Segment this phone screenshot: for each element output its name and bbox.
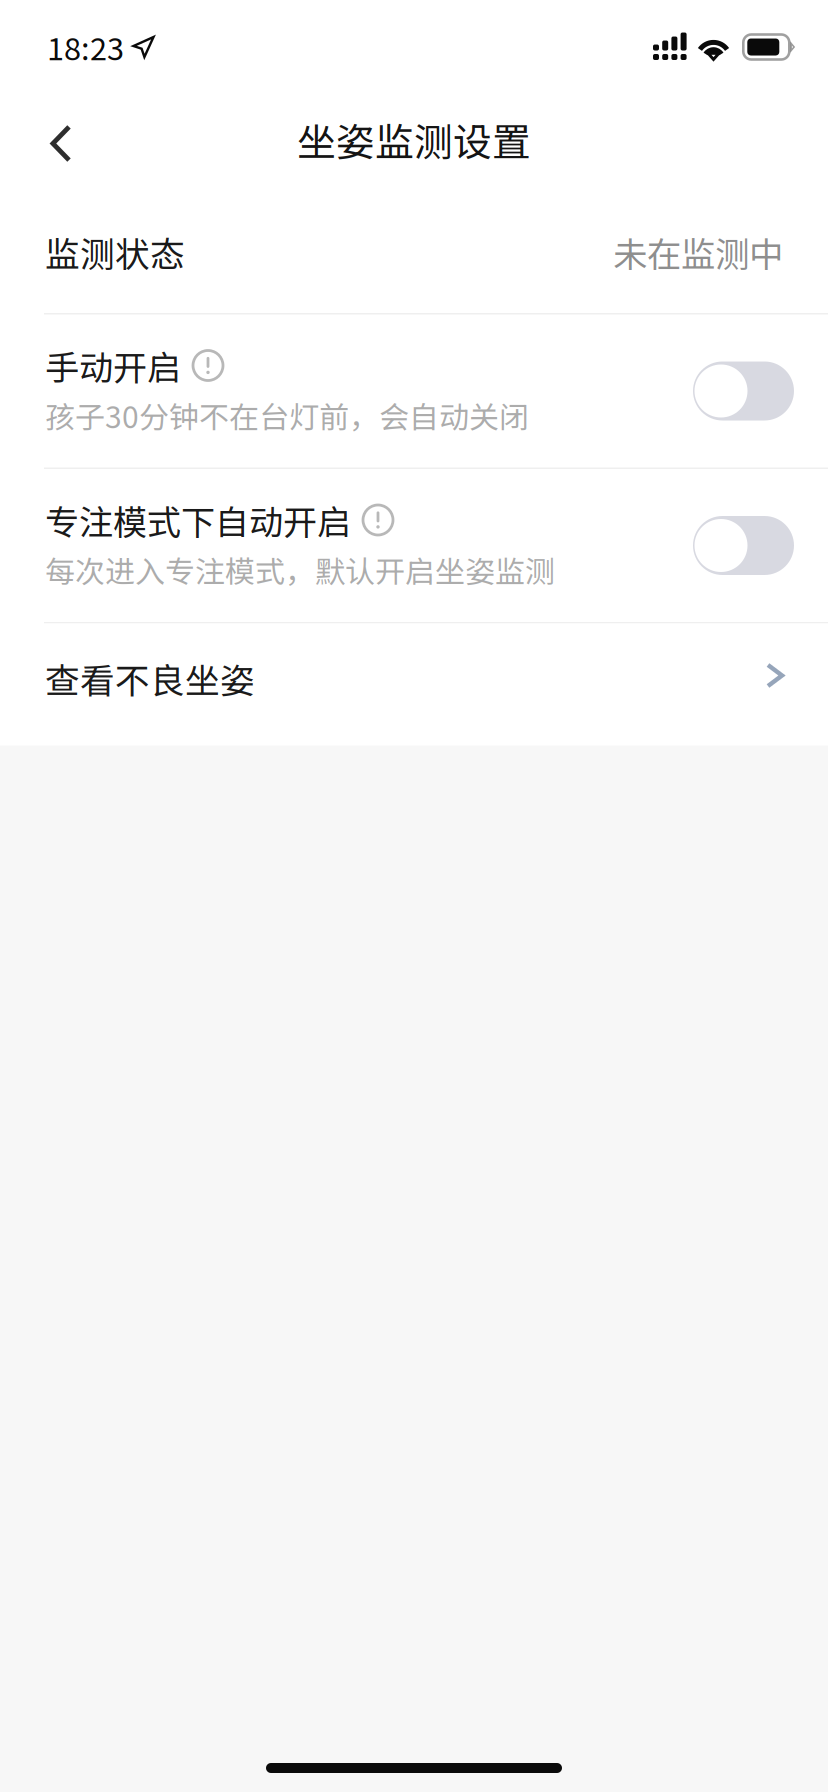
button[interactable]: More information: [362, 504, 394, 536]
button[interactable]: Back: [15, 96, 107, 191]
staticText: 监测状态: [45, 227, 185, 277]
staticText: 专注模式下自动开启: [45, 495, 351, 545]
button[interactable]: 查看不良坐姿: [0, 623, 828, 745]
staticText: 手动开启: [45, 341, 181, 390]
staticText: 孩子30分钟不在台灯前，会自动关闭: [45, 393, 529, 437]
button[interactable]: 专注模式下自动开启: [693, 516, 794, 575]
button[interactable]: 手动开启: [693, 361, 794, 420]
button[interactable]: More information: [192, 349, 224, 381]
staticText: 未在监测中: [613, 227, 783, 277]
staticText: 每次进入专注模式，默认开启坐姿监测: [45, 548, 555, 591]
staticText: 查看不良坐姿: [45, 653, 255, 704]
staticText: 坐姿监测设置: [297, 111, 531, 167]
staticText: 18:23: [47, 25, 124, 69]
